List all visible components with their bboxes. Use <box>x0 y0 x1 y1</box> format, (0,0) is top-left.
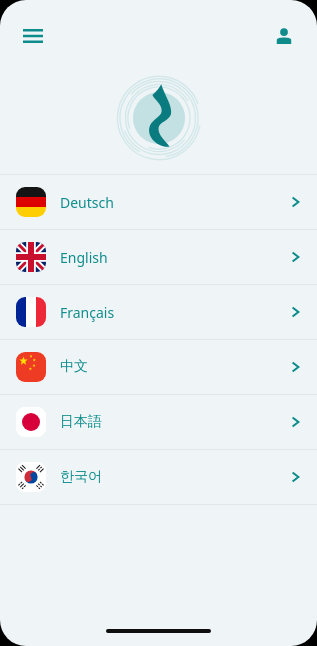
button[interactable]: Français <box>0 285 317 339</box>
staticText: 日本語 <box>60 413 102 431</box>
button[interactable]: 日本語 <box>0 395 317 449</box>
staticText: Français <box>60 303 115 322</box>
button[interactable]: 한국어 <box>0 450 317 504</box>
staticText: 中文 <box>60 358 88 376</box>
button[interactable]: 中文 <box>0 340 317 394</box>
button[interactable]: Menu <box>16 19 50 53</box>
button[interactable]: Profile <box>267 19 301 53</box>
staticText: Deutsch <box>60 193 114 212</box>
staticText: 한국어 <box>60 468 102 486</box>
button[interactable]: Deutsch <box>0 175 317 229</box>
staticText: English <box>60 248 108 267</box>
button[interactable]: English <box>0 230 317 284</box>
